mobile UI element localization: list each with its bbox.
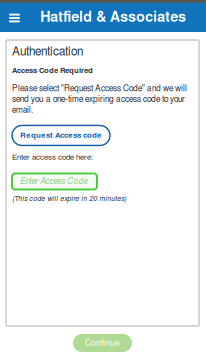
staticText: Enter access code here: (12, 153, 93, 161)
staticText: Access Code Required (12, 67, 93, 74)
staticText: Authentication (12, 46, 83, 58)
button[interactable]: Continue (73, 334, 132, 352)
button[interactable]: Request Access code (12, 125, 110, 145)
staticText: Enter Access Code (20, 177, 87, 185)
staticText: Hatfield & Associates (40, 10, 186, 25)
staticText: (This code will expire in 20 minutes) (12, 195, 126, 203)
staticText: Request Access code (20, 131, 102, 139)
button[interactable]: Menu (0, 3, 29, 32)
staticText: Please select "Request Access Code" and … (12, 84, 187, 114)
staticText: Continue (85, 339, 120, 347)
